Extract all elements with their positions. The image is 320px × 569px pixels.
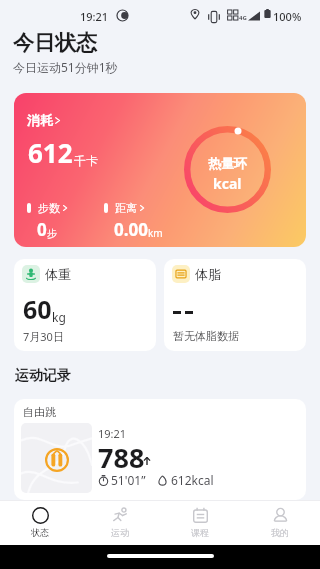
staticText: 暂无体脂数据 — [173, 329, 239, 343]
staticText: 4G — [239, 14, 247, 22]
staticText: 今日状态 — [13, 30, 97, 56]
staticText: 状态 — [31, 527, 49, 538]
staticText: 热量环 — [208, 155, 247, 171]
button[interactable]: 运动 — [80, 500, 160, 545]
staticText: 我的 — [271, 527, 289, 538]
staticText: 0 — [37, 218, 47, 241]
button[interactable]: 体脂 — [164, 259, 306, 351]
staticText: 60 — [23, 292, 52, 326]
button[interactable]: 消耗 — [14, 93, 306, 247]
staticText: 自由跳 — [23, 405, 56, 419]
staticText: 788 — [98, 439, 145, 476]
staticText: 课程 — [191, 527, 209, 538]
staticText: 运动记录 — [15, 367, 71, 385]
staticText: 体脂 — [195, 266, 221, 282]
button[interactable]: 状态 — [0, 500, 80, 545]
button[interactable]: 课程 — [160, 500, 240, 545]
staticText: 体重 — [45, 266, 71, 282]
staticText: 51'01” — [111, 472, 146, 488]
staticText: 步 — [47, 227, 57, 240]
staticText: kcal — [213, 174, 242, 193]
staticText: 运动 — [111, 527, 129, 538]
button[interactable]: 自由跳 — [14, 399, 306, 500]
staticText: 千卡 — [74, 153, 98, 168]
staticText: 612 — [28, 135, 73, 170]
staticText: 消耗 — [27, 112, 53, 128]
staticText: 步数 — [38, 201, 60, 215]
staticText: 7月30日 — [23, 329, 64, 344]
button[interactable]: 体重 — [14, 259, 156, 351]
staticText: km — [148, 226, 163, 240]
staticText: 612kcal — [171, 472, 214, 488]
staticText: 距离 — [115, 201, 137, 215]
staticText: 0.00 — [114, 218, 148, 241]
staticText: 19:21 — [80, 9, 109, 24]
staticText: 今日运动51分钟1秒 — [13, 59, 118, 75]
staticText: 100% — [273, 9, 302, 24]
staticText: 19:21 — [98, 426, 127, 441]
button[interactable]: 我的 — [240, 500, 320, 545]
staticText: kg — [52, 309, 66, 325]
